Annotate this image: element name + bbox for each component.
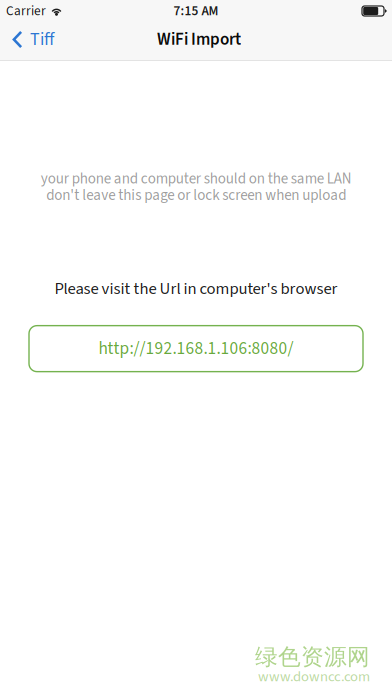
- staticText: WiFi Import: [157, 27, 241, 52]
- staticText: Please visit the Url in computer's brows…: [54, 277, 337, 301]
- staticText: 绿色资源网: [255, 643, 370, 671]
- button[interactable]: Tiff: [0, 22, 108, 60]
- staticText: 7:15 AM: [173, 1, 218, 20]
- button[interactable]: http://192.168.1.106:8080/: [29, 326, 363, 372]
- staticText: Carrier: [6, 1, 46, 20]
- staticText: your phone and computer should on the sa…: [40, 168, 351, 206]
- staticText: Tiff: [30, 27, 54, 52]
- staticText: http://192.168.1.106:8080/: [98, 336, 293, 361]
- staticText: www.downcc.com: [258, 666, 370, 687]
